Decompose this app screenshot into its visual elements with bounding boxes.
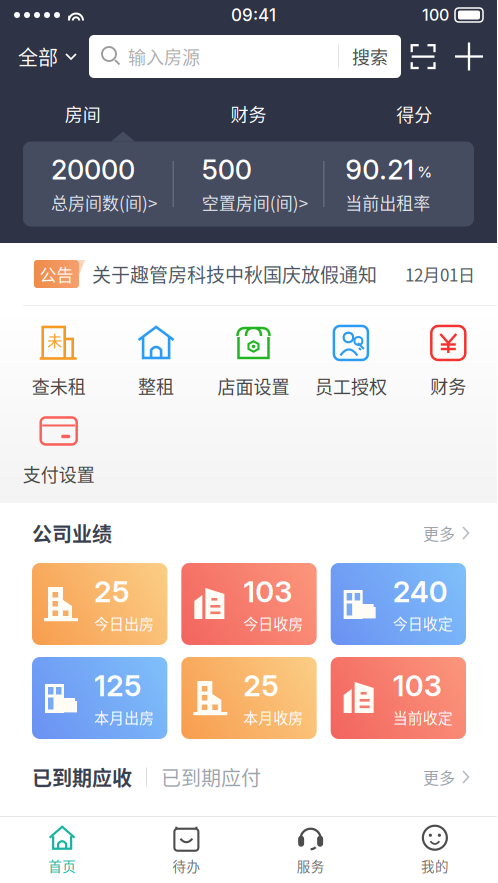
button[interactable]: 更多 [423, 757, 470, 797]
staticText: 员工授权 [315, 373, 387, 399]
staticText: 待办 [172, 856, 200, 875]
staticText: 整租 [138, 373, 174, 399]
staticText: 全部 [18, 42, 58, 71]
staticText: 25 [94, 574, 130, 609]
staticText: 09:41 [231, 5, 276, 25]
staticText: 我的 [421, 856, 449, 875]
button[interactable]: 更多 [423, 513, 470, 553]
staticText: 查未租 [32, 373, 86, 399]
staticText: 今日收房 [243, 612, 303, 634]
button[interactable]: 公告 [0, 243, 497, 305]
staticText: 当前收定 [393, 706, 453, 728]
staticText: 未 [47, 329, 62, 351]
staticText: 财务 [430, 373, 466, 399]
staticText: 店面设置 [217, 373, 289, 399]
staticText: 103 [243, 574, 292, 609]
staticText: 服务 [297, 856, 325, 875]
button[interactable]: 房间 [0, 96, 166, 132]
button[interactable]: 240 [331, 563, 466, 645]
button[interactable]: 103 [331, 657, 466, 739]
button[interactable]: 90.21 [324, 145, 474, 223]
staticText: 25 [243, 668, 279, 703]
staticText: 500 [202, 153, 252, 186]
staticText: 公告 [39, 262, 73, 286]
staticText: 本月收房 [243, 706, 303, 728]
staticText: 搜索 [352, 43, 388, 70]
button[interactable]: 我的 [373, 817, 497, 883]
staticText: 更多 [423, 765, 455, 789]
button[interactable]: 添加 [445, 35, 493, 78]
button[interactable]: 得分 [331, 96, 497, 132]
button[interactable]: 财务 [400, 317, 497, 405]
staticText: % [417, 163, 432, 181]
button[interactable]: 整租 [107, 317, 205, 405]
button[interactable]: 500 [174, 145, 323, 223]
staticText: 得分 [396, 101, 432, 127]
button[interactable]: 25 [181, 657, 317, 739]
staticText: 本月出房 [94, 706, 154, 728]
staticText: 240 [393, 574, 448, 609]
button[interactable]: 已到期应收 [32, 755, 132, 799]
staticText: 更多 [423, 521, 455, 545]
staticText: 支付设置 [23, 461, 95, 487]
staticText: 输入房源 [128, 43, 200, 70]
staticText: 103 [393, 668, 442, 703]
staticText: 总房间数(间)> [51, 190, 157, 215]
staticText: 首页 [48, 856, 76, 875]
button[interactable]: 全部 [0, 35, 89, 78]
button[interactable]: 扫一扫 [401, 35, 445, 78]
staticText: 当前出租率 [345, 190, 430, 215]
staticText: 20000 [51, 153, 135, 186]
button[interactable]: 员工授权 [302, 317, 400, 405]
button[interactable]: 未 [10, 317, 107, 405]
staticText: 公司业绩 [32, 518, 112, 547]
button[interactable]: 财务 [166, 96, 331, 132]
staticText: 12月01日 [405, 262, 475, 286]
button[interactable]: 已到期应付 [161, 755, 261, 799]
staticText: 125 [94, 668, 142, 703]
button[interactable]: 服务 [248, 817, 373, 883]
staticText: 已到期应收 [32, 762, 132, 791]
staticText: 房间 [65, 101, 101, 127]
staticText: 空置房间(间)> [202, 190, 308, 215]
button[interactable]: 店面设置 [205, 317, 302, 405]
staticText: 100 [422, 5, 449, 25]
staticText: 财务 [230, 101, 266, 127]
button[interactable]: 搜索 [339, 35, 401, 78]
button[interactable]: 125 [32, 657, 167, 739]
button[interactable]: 待办 [124, 817, 248, 883]
staticText: 今日出房 [94, 612, 154, 634]
staticText: 已到期应付 [161, 762, 261, 791]
staticText: 关于趣管房科技中秋国庆放假通知 [92, 260, 377, 288]
button[interactable]: 首页 [0, 817, 124, 883]
button[interactable]: 20000 [23, 145, 173, 223]
button[interactable]: 支付设置 [10, 405, 107, 493]
staticText: 今日收定 [393, 612, 453, 634]
button[interactable]: 25 [32, 563, 167, 645]
staticText: 90.21 [345, 153, 414, 186]
button[interactable]: 103 [181, 563, 317, 645]
